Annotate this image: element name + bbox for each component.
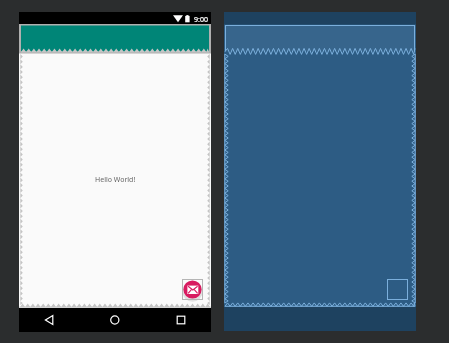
button[interactable]: Hello World! (19, 168, 211, 192)
button[interactable]: Recent apps (167, 308, 195, 332)
staticText: Hello World! (95, 175, 136, 185)
button[interactable]: Home (101, 308, 129, 332)
button[interactable]: Compose email (183, 280, 202, 299)
button[interactable]: Back (35, 308, 63, 332)
staticText: 9:00 (194, 15, 208, 25)
